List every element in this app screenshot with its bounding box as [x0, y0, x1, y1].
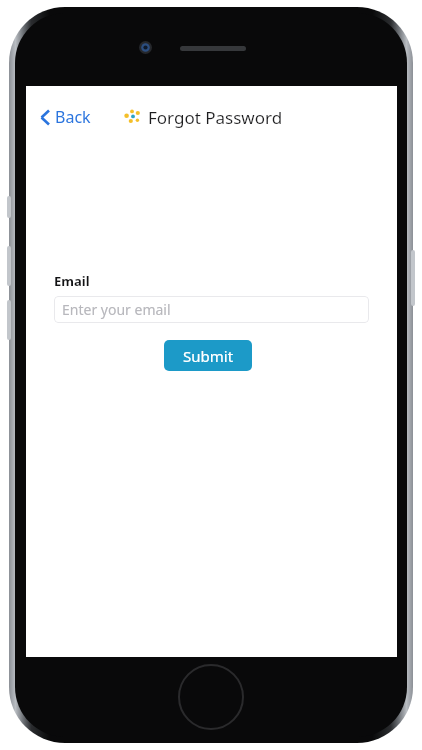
staticText: Submit: [183, 346, 234, 366]
button[interactable]: Back: [34, 100, 97, 134]
staticText: Forgot Password: [148, 106, 283, 129]
button[interactable]: Enter your email: [54, 296, 369, 323]
button[interactable]: Submit: [164, 340, 252, 371]
staticText: Enter your email: [62, 300, 171, 319]
staticText: Email: [54, 272, 90, 290]
other: Home: [178, 664, 244, 730]
staticText: Back: [55, 106, 91, 128]
